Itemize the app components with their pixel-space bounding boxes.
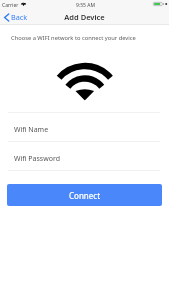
button[interactable]: Connect [7,184,162,206]
staticText: Wifi Password [14,154,61,164]
staticText: Back [11,12,28,22]
staticText: Carrier [2,2,19,9]
staticText: Add Device [0,12,169,22]
button[interactable]: Wifi Name [0,112,169,141]
button[interactable]: Wifi Password [0,141,169,170]
staticText: Wifi Name [14,125,49,135]
other: Battery [153,2,168,6]
staticText: 9:55 AM [76,2,95,9]
staticText: Connect [69,190,101,201]
staticText: Choose a WIFI network to connect your de… [11,34,136,42]
other: Wi-Fi signal [20,2,27,6]
button[interactable]: Back [4,11,28,23]
other: Wi-Fi [56,62,114,101]
